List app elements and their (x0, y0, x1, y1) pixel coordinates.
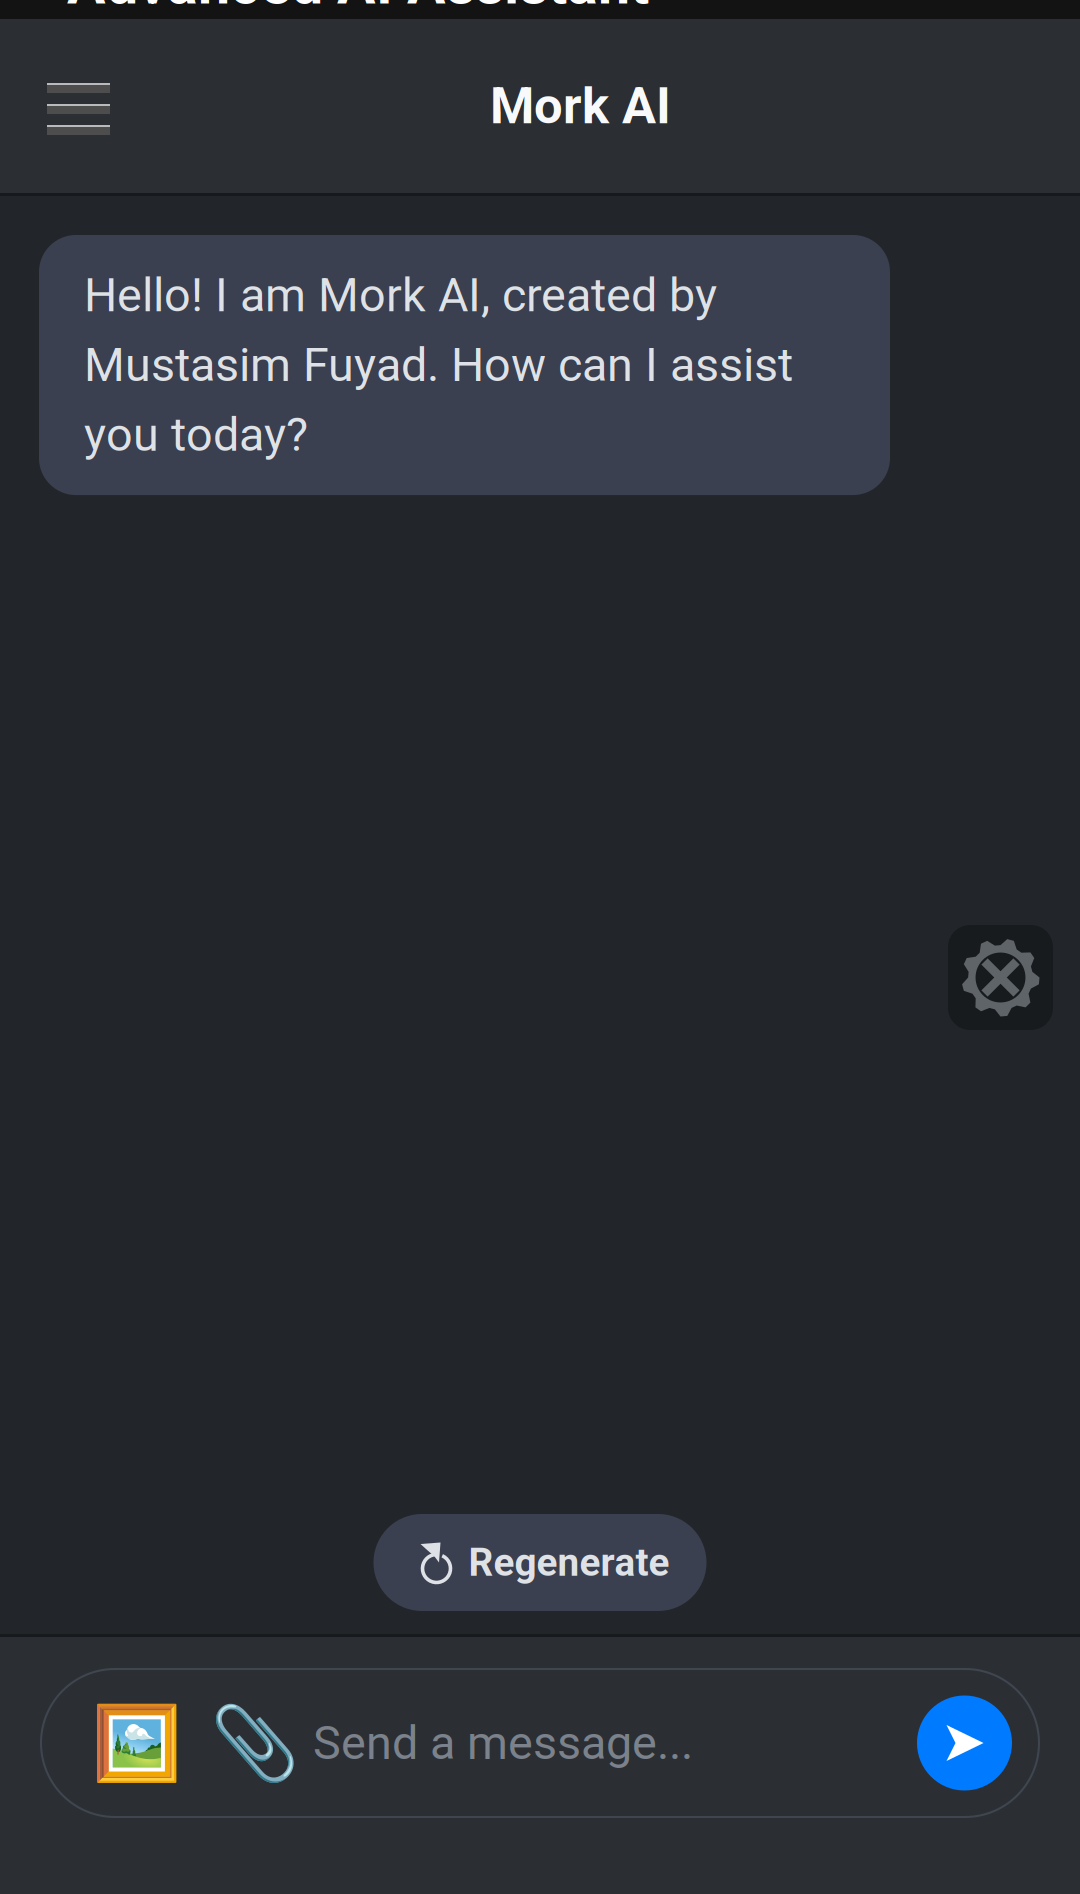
button[interactable]: Add image (99, 1705, 175, 1781)
button[interactable]: Tools (948, 925, 1053, 1030)
button[interactable]: Send (917, 1695, 1012, 1790)
button[interactable]: Menu (0, 19, 167, 193)
staticText: Send a message... (313, 1716, 693, 1770)
button[interactable]: Regenerate (373, 1514, 706, 1611)
staticText: Hello! I am Mork AI, created by Mustasim… (84, 268, 793, 462)
staticText: Regenerate (468, 1540, 669, 1585)
staticText: 📎 (210, 1701, 300, 1785)
button[interactable]: Attach file (217, 1705, 293, 1781)
staticText: 🖼️ (92, 1701, 182, 1785)
staticText: Mork AI (490, 76, 671, 136)
staticText: Advanced AI Assistant (67, 0, 649, 18)
